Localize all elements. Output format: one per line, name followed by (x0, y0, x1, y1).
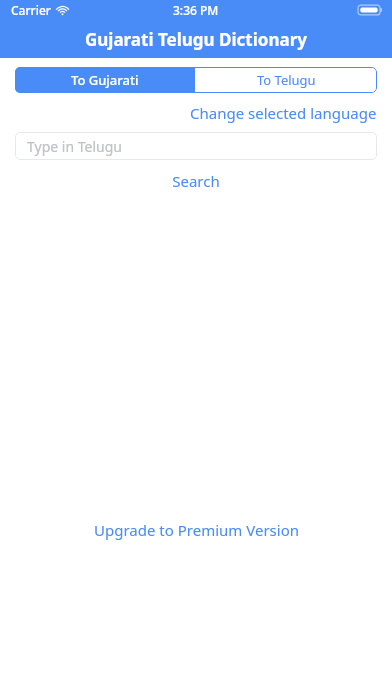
button[interactable]: Search (158, 168, 234, 194)
staticText: Upgrade to Premium Version (94, 520, 299, 540)
staticText: Type in Telugu (27, 137, 122, 156)
button[interactable]: Change selected language (190, 103, 377, 123)
button[interactable]: To Gujarati (15, 67, 195, 93)
staticText: Change selected language (190, 103, 377, 123)
staticText: To Telugu (257, 71, 316, 89)
staticText: Search (172, 171, 220, 191)
staticText: To Gujarati (71, 71, 139, 89)
button[interactable]: Upgrade to Premium Version (80, 516, 313, 544)
button[interactable]: To Telugu (195, 67, 377, 93)
staticText: 3:36 PM (173, 2, 219, 18)
staticText: Carrier (11, 2, 51, 18)
button[interactable]: Type in Telugu (15, 132, 377, 160)
staticText: Gujarati Telugu Dictionary (85, 28, 307, 51)
